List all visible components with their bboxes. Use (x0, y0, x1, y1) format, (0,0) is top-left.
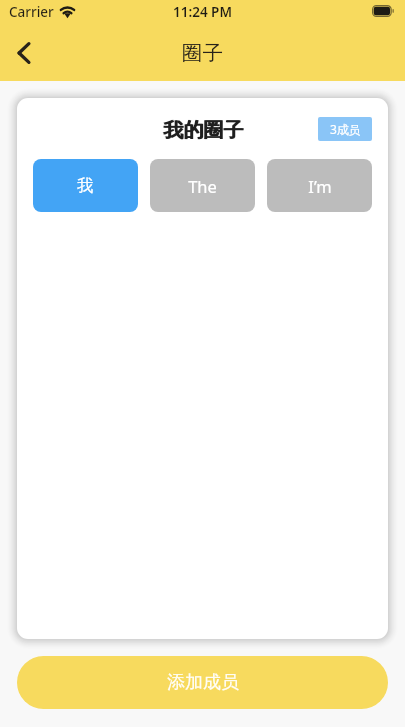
staticText: The (188, 175, 217, 197)
staticText: 3成员 (330, 121, 361, 137)
button[interactable]: I’m (267, 159, 372, 212)
staticText: 我 (77, 175, 94, 196)
button[interactable]: Back (0, 27, 48, 78)
staticText: 我的圈子 (163, 118, 243, 143)
staticText: 11:24 PM (173, 3, 232, 21)
button[interactable]: 添加成员 (17, 656, 388, 709)
staticText: 圈子 (182, 40, 223, 66)
staticText: I’m (308, 175, 332, 197)
staticText: 我的圈子 (164, 118, 244, 143)
button[interactable]: 3成员 (318, 117, 372, 141)
button[interactable]: The (150, 159, 255, 212)
staticText: Carrier (9, 3, 54, 21)
button[interactable]: 我 (33, 159, 138, 212)
staticText: 添加成员 (167, 671, 239, 694)
